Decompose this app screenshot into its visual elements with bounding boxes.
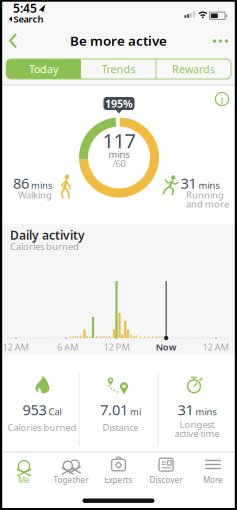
staticText: Search [13,13,43,25]
button[interactable]: Back [2,29,24,51]
staticText: Walking [18,189,52,201]
staticText: /60 [112,157,125,169]
staticText: Me [18,474,30,485]
staticText: Experts [104,474,132,485]
staticText: Now [156,341,177,353]
button[interactable]: Discover [142,451,189,485]
staticText: 953 [22,400,46,419]
staticText: 5:45 [13,0,37,16]
button[interactable]: More [189,451,236,485]
staticText: Trends [101,62,135,76]
staticText: 12 PM [103,341,129,353]
staticText: Distance [102,421,138,434]
staticText: More [203,474,223,485]
staticText: mi [130,405,141,418]
staticText: Rewards [172,62,215,76]
staticText: Running [186,189,224,201]
button[interactable]: More options [207,32,233,50]
button[interactable]: Info [212,89,232,109]
staticText: 6 AM [57,341,78,353]
staticText: Calories burned [7,421,76,434]
staticText: mins [195,405,216,418]
button[interactable]: Trends [81,59,156,79]
staticText: mins [31,179,52,191]
staticText: 31 [177,400,193,419]
staticText: and more [186,198,229,210]
staticText: Discover [149,474,182,485]
staticText: 117 [102,127,135,154]
button[interactable]: Together [47,451,94,485]
staticText: Daily activity [10,227,85,243]
staticText: 86 [13,173,29,193]
staticText: Be more active [70,32,167,49]
button[interactable]: Today [6,59,81,79]
staticText: 31 [180,173,196,193]
staticText: 12 AM [2,341,28,353]
staticText: Calories burned [10,240,79,253]
button[interactable]: Rewards [156,59,231,79]
staticText: 7.01 [100,400,128,419]
staticText: i [220,91,223,107]
staticText: active time [174,427,219,440]
button[interactable]: Me [0,451,47,485]
staticText: Longest [179,418,214,431]
staticText: 195% [105,96,133,111]
staticText: mins [198,179,219,191]
staticText: 12 AM [202,341,228,353]
staticText: Cal [48,405,61,418]
staticText: Today [29,62,58,76]
button[interactable]: Experts [95,451,142,485]
staticText: Together [53,474,88,485]
staticText: mins [108,148,129,160]
